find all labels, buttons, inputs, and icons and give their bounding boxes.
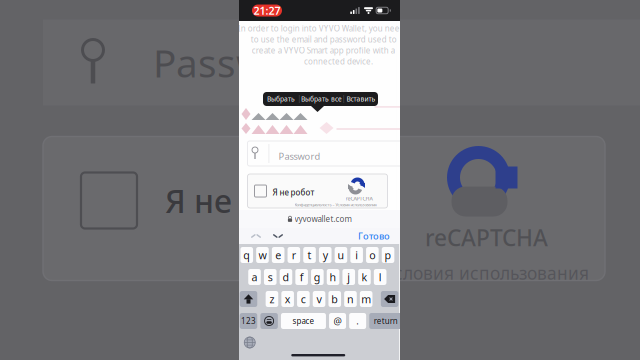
button[interactable]: u (335, 247, 347, 263)
staticText: p (385, 248, 392, 262)
staticText: d (282, 270, 289, 284)
button[interactable]: b (328, 291, 341, 307)
button[interactable]: 123 (240, 313, 257, 329)
staticText: u (337, 248, 344, 262)
button[interactable]: c (297, 291, 310, 307)
staticText: c (301, 292, 306, 306)
staticText: h (330, 270, 337, 284)
staticText: Password (153, 37, 328, 88)
staticText: connected device. (304, 56, 373, 67)
staticText: In order to login into VYVO Wallet, you … (238, 23, 405, 34)
staticText: g (314, 270, 321, 284)
button[interactable]: p (382, 247, 394, 263)
button[interactable]: a (248, 269, 261, 285)
staticText: z (269, 292, 274, 306)
button[interactable]: Next field (269, 228, 287, 244)
staticText: @ (334, 315, 342, 327)
button[interactable]: @ (329, 313, 346, 329)
staticText: return (374, 316, 398, 326)
button[interactable]: Shift (240, 291, 257, 307)
button[interactable]: m (360, 291, 372, 307)
staticText: Выбрать все (301, 95, 342, 103)
button[interactable]: h (327, 269, 339, 285)
staticText: Я не робот (272, 187, 314, 198)
button[interactable]: vyvowallet.com (239, 210, 400, 228)
button[interactable]: s (264, 269, 276, 285)
staticText: i (355, 248, 358, 262)
staticText: r (292, 248, 296, 262)
button[interactable]: d (280, 269, 292, 285)
button[interactable]: Вставить (344, 92, 378, 106)
staticText: Вставить (347, 95, 376, 103)
staticText: Готово (358, 230, 390, 242)
staticText: m (361, 292, 371, 306)
staticText: to use the email and password used to (251, 34, 397, 45)
button[interactable]: n (344, 291, 357, 307)
button[interactable]: Emoji (260, 313, 278, 329)
button[interactable]: Previous field (247, 228, 265, 244)
staticText: . (356, 315, 359, 327)
staticText: reCAPTCHA (345, 195, 372, 202)
staticText: b (331, 292, 338, 306)
staticText: l (379, 270, 382, 284)
button[interactable]: i (350, 247, 363, 263)
button[interactable]: t (303, 247, 316, 263)
staticText: Конфиденциальность – Условия использован… (294, 202, 376, 207)
staticText: j (347, 270, 350, 284)
staticText: w (258, 248, 266, 262)
button[interactable]: . (349, 313, 366, 329)
button[interactable]: g (311, 269, 324, 285)
staticText: Условия использования (384, 262, 589, 285)
staticText: Password (278, 150, 320, 162)
staticText: space (292, 316, 314, 326)
staticText: create a VYVO Smart app profile with a (252, 45, 395, 56)
button[interactable]: k (358, 269, 371, 285)
staticText: 21:27 (253, 3, 280, 18)
button[interactable]: Delete (381, 291, 398, 307)
staticText: n (347, 292, 354, 306)
staticText: q (243, 248, 250, 262)
staticText: a (252, 270, 258, 284)
staticText: t (308, 248, 312, 262)
button[interactable]: Выбрать (263, 92, 299, 106)
staticText: reCAPTCHA (425, 222, 548, 253)
button[interactable]: o (366, 247, 379, 263)
button[interactable]: f (295, 269, 308, 285)
button[interactable]: space (281, 313, 326, 329)
staticText: f (300, 270, 304, 284)
staticText: v (317, 292, 322, 306)
button[interactable]: Выбрать все (299, 92, 343, 106)
button[interactable]: Готово (358, 228, 390, 244)
button[interactable]: y (319, 247, 331, 263)
button[interactable]: r (287, 247, 300, 263)
staticText: Я не робот (165, 179, 332, 222)
button[interactable]: j (342, 269, 355, 285)
button[interactable]: Switch keyboard (243, 336, 256, 349)
staticText: k (361, 270, 367, 284)
staticText: y (323, 248, 328, 262)
button[interactable]: I'm not a robot (254, 185, 266, 197)
staticText: 123 (241, 316, 256, 326)
staticText: vyvowallet.com (294, 214, 351, 224)
staticText: e (275, 248, 281, 262)
staticText: s (268, 270, 273, 284)
button[interactable]: z (266, 291, 278, 307)
button[interactable]: e (272, 247, 284, 263)
button[interactable]: v (313, 291, 325, 307)
button[interactable]: x (281, 291, 294, 307)
staticText: Выбрать (267, 95, 295, 103)
button[interactable]: Password (247, 141, 415, 166)
button[interactable]: l (374, 269, 386, 285)
button[interactable]: q (240, 247, 253, 263)
button[interactable]: w (256, 247, 269, 263)
staticText: x (285, 292, 291, 306)
staticText: o (369, 248, 375, 262)
button[interactable]: return (369, 313, 402, 329)
